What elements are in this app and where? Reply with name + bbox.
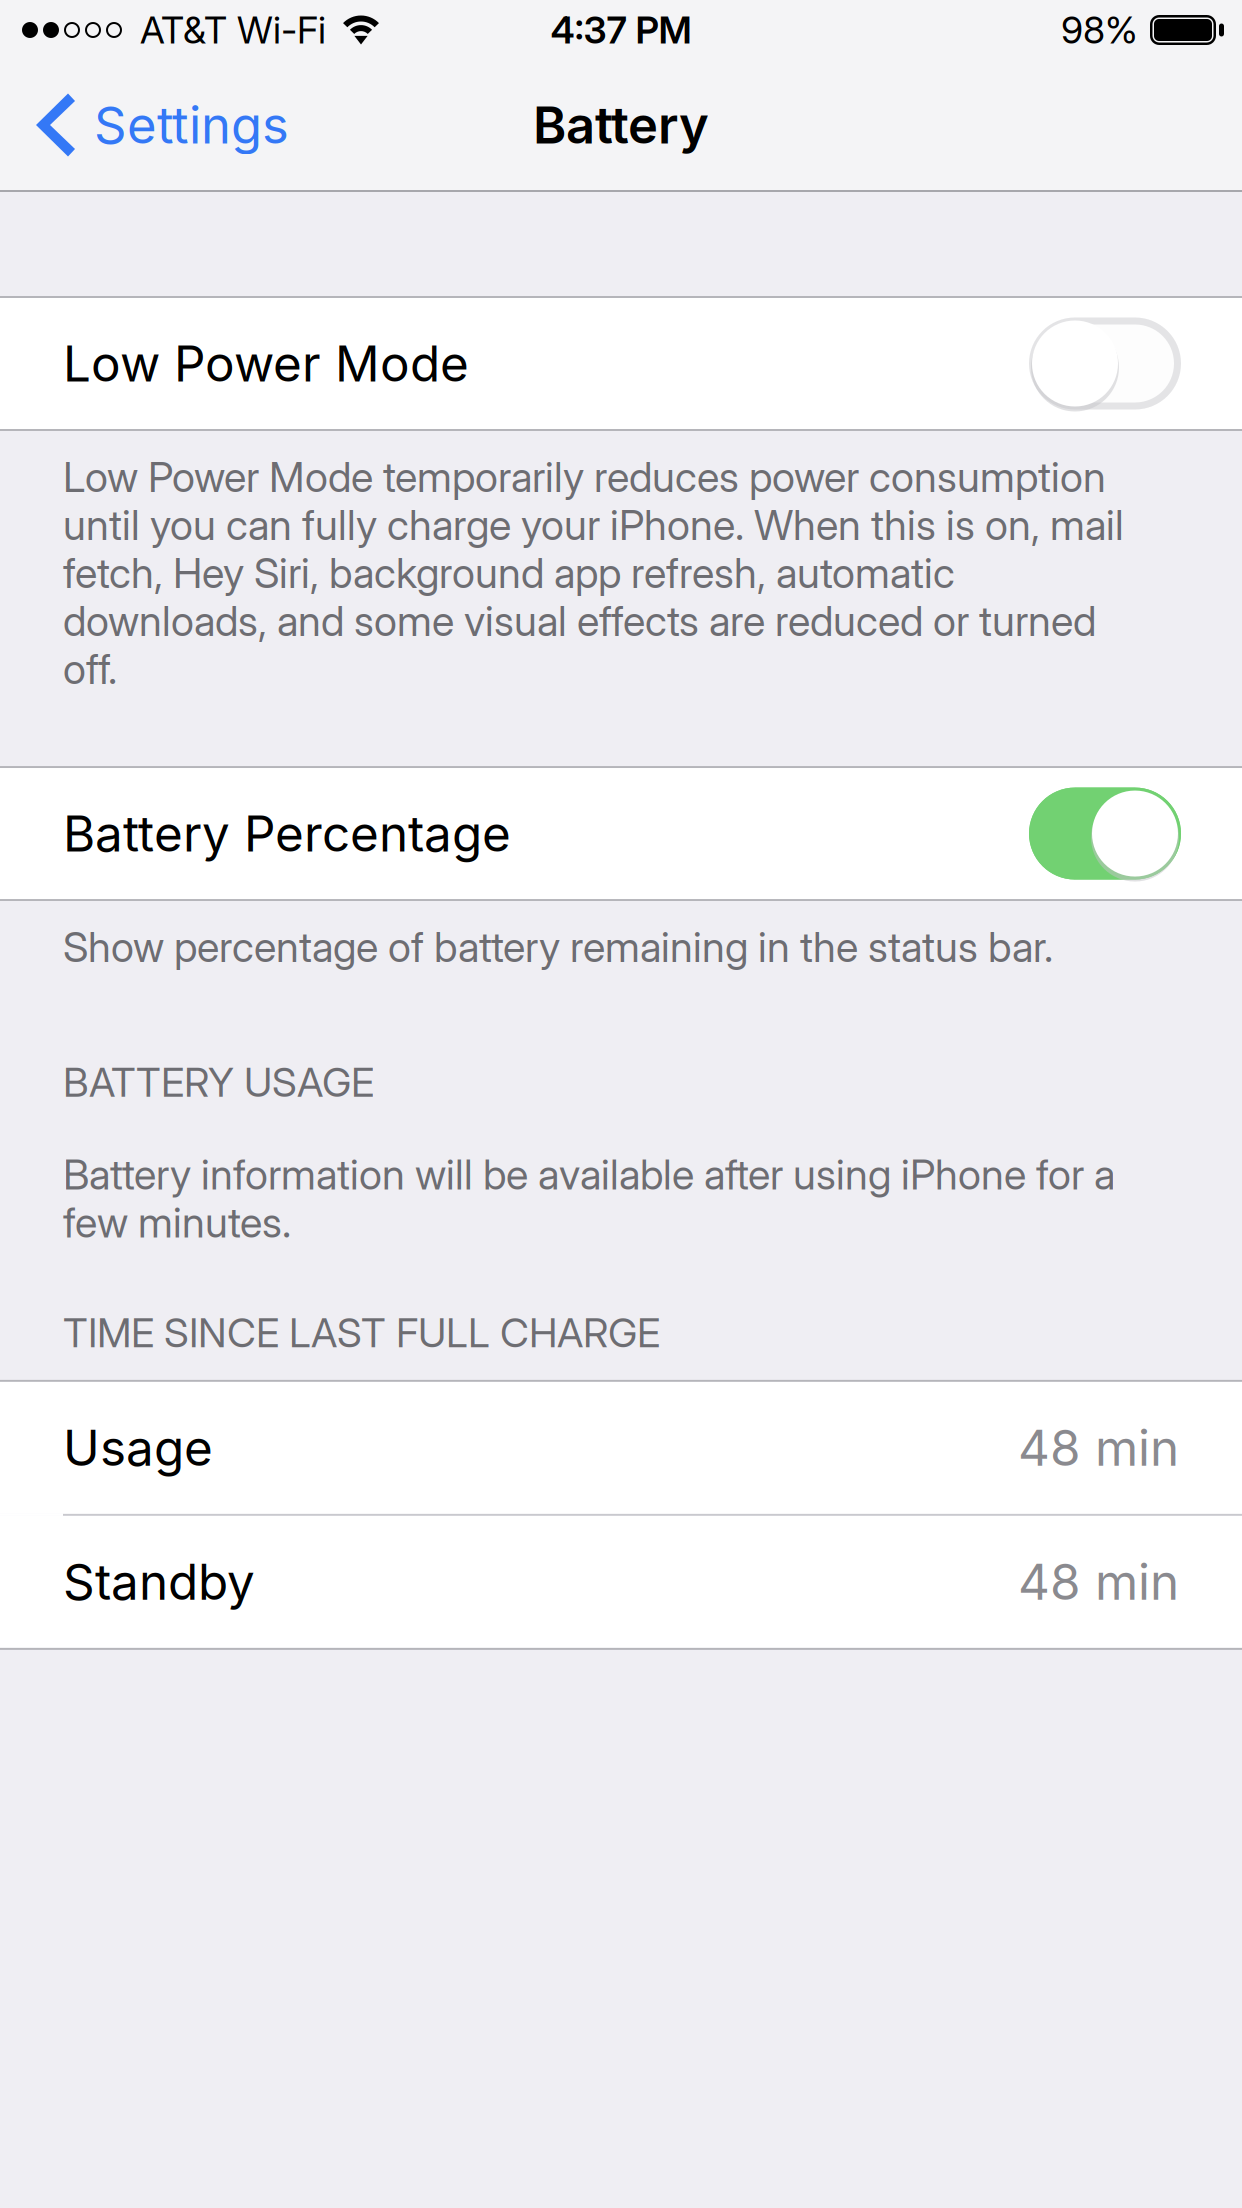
staticText: Battery Percentage bbox=[63, 804, 511, 863]
button[interactable]: Battery Percentage bbox=[0, 768, 1242, 899]
staticText: 48 min bbox=[1018, 1552, 1179, 1612]
button[interactable]: Low Power Mode bbox=[0, 298, 1242, 429]
staticText: Show percentage of battery remaining in … bbox=[63, 922, 1053, 972]
staticText: AT&T Wi-Fi bbox=[140, 7, 326, 53]
staticText: Battery bbox=[533, 94, 709, 156]
staticText: Settings bbox=[94, 94, 289, 156]
staticText: Usage bbox=[63, 1418, 213, 1478]
staticText: Battery information will be available af… bbox=[63, 1149, 1115, 1247]
staticText: Low Power Mode bbox=[63, 334, 469, 393]
staticText: 48 min bbox=[1018, 1418, 1179, 1478]
staticText: Low Power Mode temporarily reduces power… bbox=[63, 452, 1124, 694]
staticText: 4:37 PM bbox=[550, 7, 691, 53]
staticText: TIME SINCE LAST FULL CHARGE bbox=[63, 1308, 660, 1357]
staticText: BATTERY USAGE bbox=[63, 1058, 374, 1106]
staticText: 98% bbox=[1061, 7, 1138, 53]
button[interactable]: Settings bbox=[0, 60, 317, 190]
staticText: Standby bbox=[63, 1552, 255, 1612]
